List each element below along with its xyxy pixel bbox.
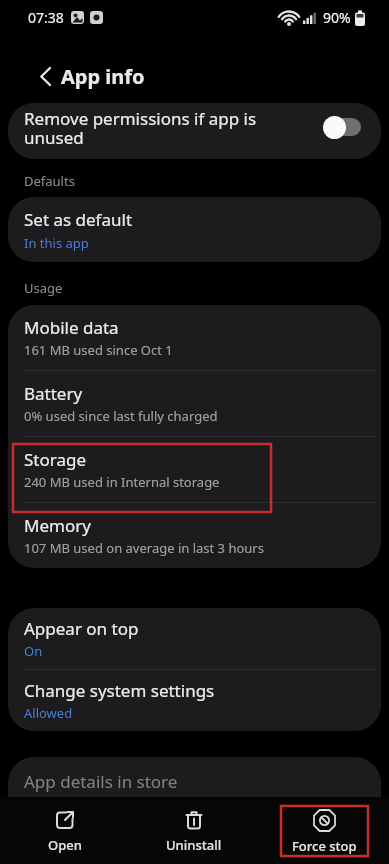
staticText: 0% used since last fully charged <box>24 407 218 425</box>
staticText: On <box>24 642 43 660</box>
button[interactable] <box>323 113 361 141</box>
button[interactable]: Open <box>0 797 129 864</box>
staticText: 90% <box>323 8 351 27</box>
staticText: Mobile data <box>24 316 119 339</box>
button[interactable]: Force stop <box>259 797 389 864</box>
staticText: Uninstall <box>166 836 222 854</box>
staticText: Storage <box>24 448 87 471</box>
button[interactable]: Mobile data <box>8 305 381 370</box>
staticText: Change system settings <box>24 679 215 702</box>
button[interactable] <box>23 54 67 98</box>
button[interactable]: Uninstall <box>129 797 259 864</box>
button[interactable]: Set as default <box>8 197 381 262</box>
staticText: Battery <box>24 382 83 405</box>
staticText: Open <box>48 836 82 854</box>
staticText: 240 MB used in Internal storage <box>24 473 220 491</box>
staticText: App info <box>61 63 145 90</box>
staticText: Set as default <box>24 208 133 231</box>
staticText: Usage <box>24 279 63 297</box>
staticText: App details in store <box>24 770 178 793</box>
button[interactable]: App details in store <box>8 757 381 797</box>
button[interactable]: Appear on top <box>8 608 381 669</box>
button[interactable]: Change system settings <box>8 670 381 731</box>
staticText: Force stop <box>292 837 357 855</box>
staticText: Allowed <box>24 704 73 722</box>
button[interactable]: Memory <box>8 503 381 568</box>
staticText: Remove permissions if app is unused <box>24 107 257 149</box>
staticText: 07:38 <box>28 8 64 27</box>
staticText: Memory <box>24 514 91 537</box>
button[interactable]: Remove permissions if app is unused <box>8 103 381 159</box>
staticText: Appear on top <box>24 617 139 640</box>
staticText: In this app <box>24 234 89 252</box>
staticText: Defaults <box>24 172 75 190</box>
button[interactable]: Battery <box>8 371 381 436</box>
staticText: 107 MB used on average in last 3 hours <box>24 539 264 557</box>
staticText: 161 MB used since Oct 1 <box>24 341 173 359</box>
button[interactable]: Storage <box>8 437 381 502</box>
